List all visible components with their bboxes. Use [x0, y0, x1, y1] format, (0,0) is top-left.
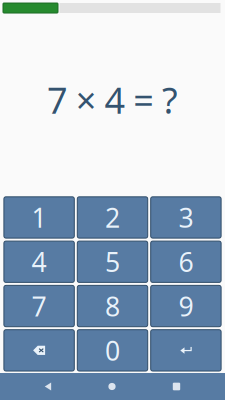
button[interactable]: Enter: [151, 330, 221, 371]
button[interactable]: 5: [77, 241, 148, 282]
button[interactable]: 8: [77, 285, 148, 327]
button[interactable]: 3: [151, 197, 221, 238]
button[interactable]: Back: [0, 373, 96, 400]
button[interactable]: 7: [4, 285, 74, 327]
staticText: 5: [105, 244, 120, 279]
button[interactable]: 6: [151, 241, 221, 282]
staticText: 9: [178, 288, 193, 324]
staticText: 1: [32, 200, 47, 235]
staticText: 7: [32, 288, 47, 324]
staticText: 4: [32, 244, 47, 279]
button[interactable]: Recents: [128, 373, 225, 400]
staticText: 0: [105, 333, 120, 368]
button[interactable]: 1: [4, 197, 74, 238]
button[interactable]: Delete: [4, 330, 74, 371]
staticText: 3: [178, 200, 193, 235]
staticText: 2: [105, 200, 120, 235]
button[interactable]: 9: [151, 285, 221, 327]
staticText: 6: [178, 244, 193, 279]
button[interactable]: Home: [96, 373, 128, 400]
button[interactable]: 4: [4, 241, 74, 282]
staticText: 8: [105, 288, 120, 324]
staticText: 7 × 4 = ?: [47, 76, 178, 124]
button[interactable]: 0: [77, 330, 148, 371]
button[interactable]: 2: [77, 197, 148, 238]
